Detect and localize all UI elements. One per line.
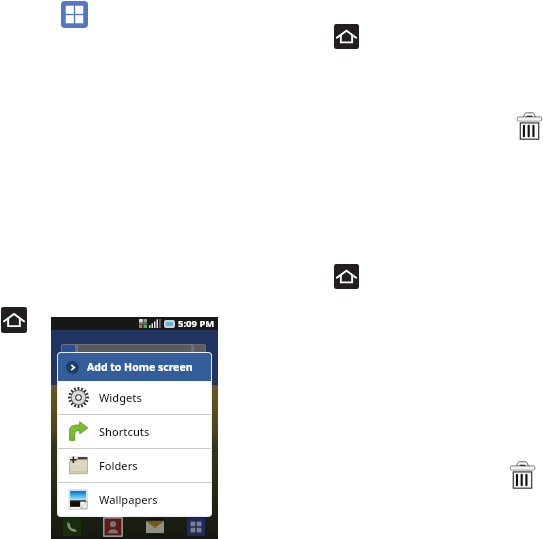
button[interactable]: Add to Home screen: [58, 353, 211, 381]
staticText: Widgets: [99, 390, 142, 405]
staticText: Add to Home screen: [87, 360, 193, 374]
button[interactable]: Contacts: [104, 518, 122, 536]
staticText: 5:09 PM: [178, 317, 215, 330]
button[interactable]: Shortcuts: [58, 415, 211, 448]
button[interactable]: Delete: [510, 461, 535, 489]
button[interactable]: Home: [334, 264, 359, 289]
button[interactable]: Folders: [58, 449, 211, 482]
staticText: Folders: [99, 458, 138, 473]
button[interactable]: Widgets: [58, 381, 211, 414]
button[interactable]: Wallpapers: [58, 483, 211, 516]
button[interactable]: Widgets: [61, 1, 88, 28]
staticText: Wallpapers: [99, 492, 158, 507]
button[interactable]: Search: [61, 344, 206, 360]
staticText: Shortcuts: [99, 424, 150, 439]
button[interactable]: Phone: [63, 518, 81, 536]
button[interactable]: Email: [146, 518, 164, 536]
button[interactable]: Home: [334, 24, 359, 49]
button[interactable]: Home: [1, 307, 27, 333]
button[interactable]: Delete: [517, 112, 542, 140]
button[interactable]: Apps: [187, 518, 205, 536]
